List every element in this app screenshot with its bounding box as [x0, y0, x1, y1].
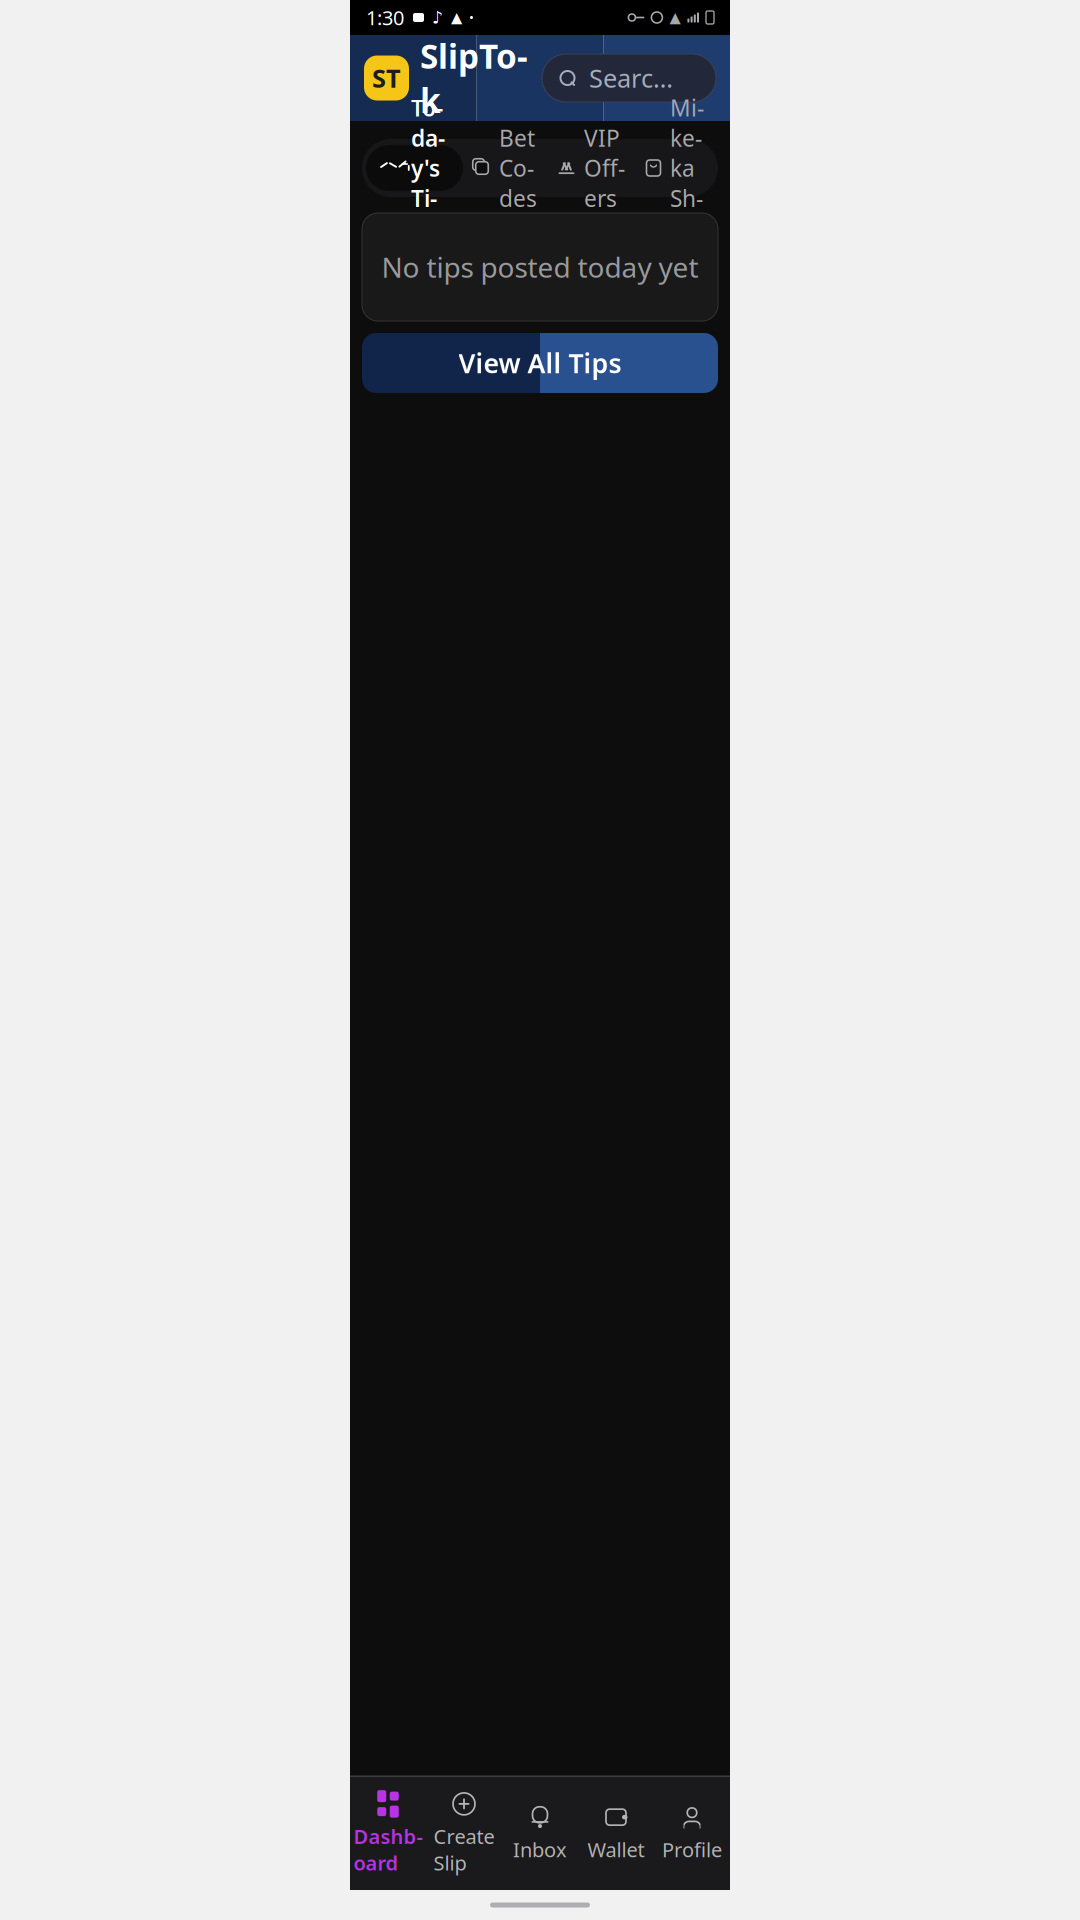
button[interactable]: Wallet — [578, 1801, 654, 1867]
button[interactable]: Dashboard — [350, 1788, 426, 1880]
staticText: Mikeka Shop — [670, 93, 704, 243]
button[interactable]: Inbox — [502, 1801, 578, 1867]
staticText: No tips posted today yet — [381, 248, 698, 286]
staticText: ♪ — [432, 8, 443, 27]
staticText: Today's Tips — [411, 93, 445, 243]
staticText: Profile — [662, 1836, 722, 1863]
staticText: Dashboard — [353, 1823, 422, 1876]
button[interactable]: Search user, code, match or rollov — [542, 54, 716, 102]
staticText: Bet Codes — [499, 123, 537, 213]
staticText: View All Tips — [458, 345, 621, 381]
button[interactable]: VIP Offers — [547, 145, 635, 191]
button[interactable]: Mikeka Shop — [635, 145, 714, 191]
staticText: VIP Offers — [584, 123, 625, 213]
staticText: 1:30 — [366, 4, 404, 31]
staticText: Inbox — [513, 1836, 567, 1863]
staticText: ▲ — [451, 9, 462, 26]
button[interactable]: Bet Codes — [463, 145, 547, 191]
staticText: SlipTok — [420, 34, 528, 122]
button[interactable]: Profile — [654, 1801, 730, 1867]
button[interactable]: ST — [364, 34, 528, 122]
staticText: ▲ — [669, 9, 680, 26]
button[interactable]: Create Slip — [426, 1788, 502, 1880]
staticText: Wallet — [587, 1836, 644, 1863]
staticText: ST — [372, 61, 401, 95]
staticText: Search user, code, match or rollov — [589, 61, 688, 95]
button[interactable]: Today's Tips — [366, 145, 463, 191]
staticText: Create Slip — [433, 1823, 494, 1876]
button[interactable]: View All Tips — [362, 333, 718, 393]
